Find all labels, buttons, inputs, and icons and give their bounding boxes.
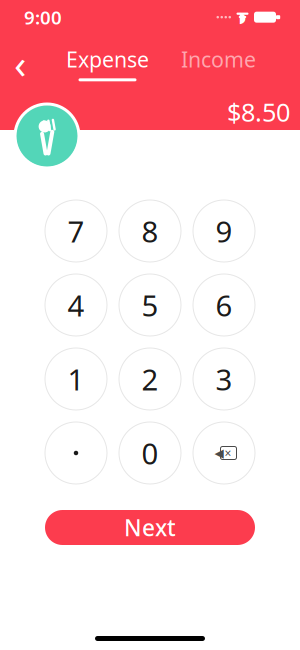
staticText: 6 — [215, 285, 232, 324]
button[interactable]: 6 — [193, 274, 255, 336]
staticText: 0 — [141, 433, 158, 472]
staticText: Expense — [66, 45, 149, 73]
staticText: ‹ — [14, 37, 26, 90]
button[interactable]: Back — [0, 41, 40, 85]
staticText: 9:00 — [24, 5, 62, 30]
staticText: 9 — [215, 211, 232, 250]
button[interactable]: 3 — [193, 348, 255, 410]
staticText: Income — [181, 45, 256, 73]
button[interactable]: 8 — [119, 200, 181, 262]
staticText: ◀ — [214, 446, 223, 460]
button[interactable]: Expense — [66, 41, 149, 85]
staticText: 4 — [67, 285, 84, 324]
staticText: ◗ — [238, 9, 246, 25]
staticText: 3 — [215, 359, 232, 398]
staticText: Next — [124, 512, 176, 542]
staticText: × — [224, 445, 231, 461]
button[interactable]: 0 — [119, 422, 181, 484]
staticText: 2 — [141, 359, 158, 398]
button[interactable]: 4 — [45, 274, 107, 336]
staticText: 8 — [141, 211, 158, 250]
button[interactable]: 1 — [45, 348, 107, 410]
button[interactable]: Next — [45, 510, 255, 545]
button[interactable]: 9 — [193, 200, 255, 262]
staticText: 5 — [141, 285, 158, 324]
staticText: 1 — [67, 359, 84, 398]
button[interactable]: 5 — [119, 274, 181, 336]
button[interactable]: Income — [181, 41, 256, 85]
staticText: $8.50 — [227, 95, 290, 129]
staticText: 7 — [67, 211, 84, 250]
button[interactable]: Decimal point — [45, 422, 107, 484]
button[interactable]: 7 — [45, 200, 107, 262]
button[interactable]: Delete — [193, 422, 255, 484]
button[interactable]: 2 — [119, 348, 181, 410]
